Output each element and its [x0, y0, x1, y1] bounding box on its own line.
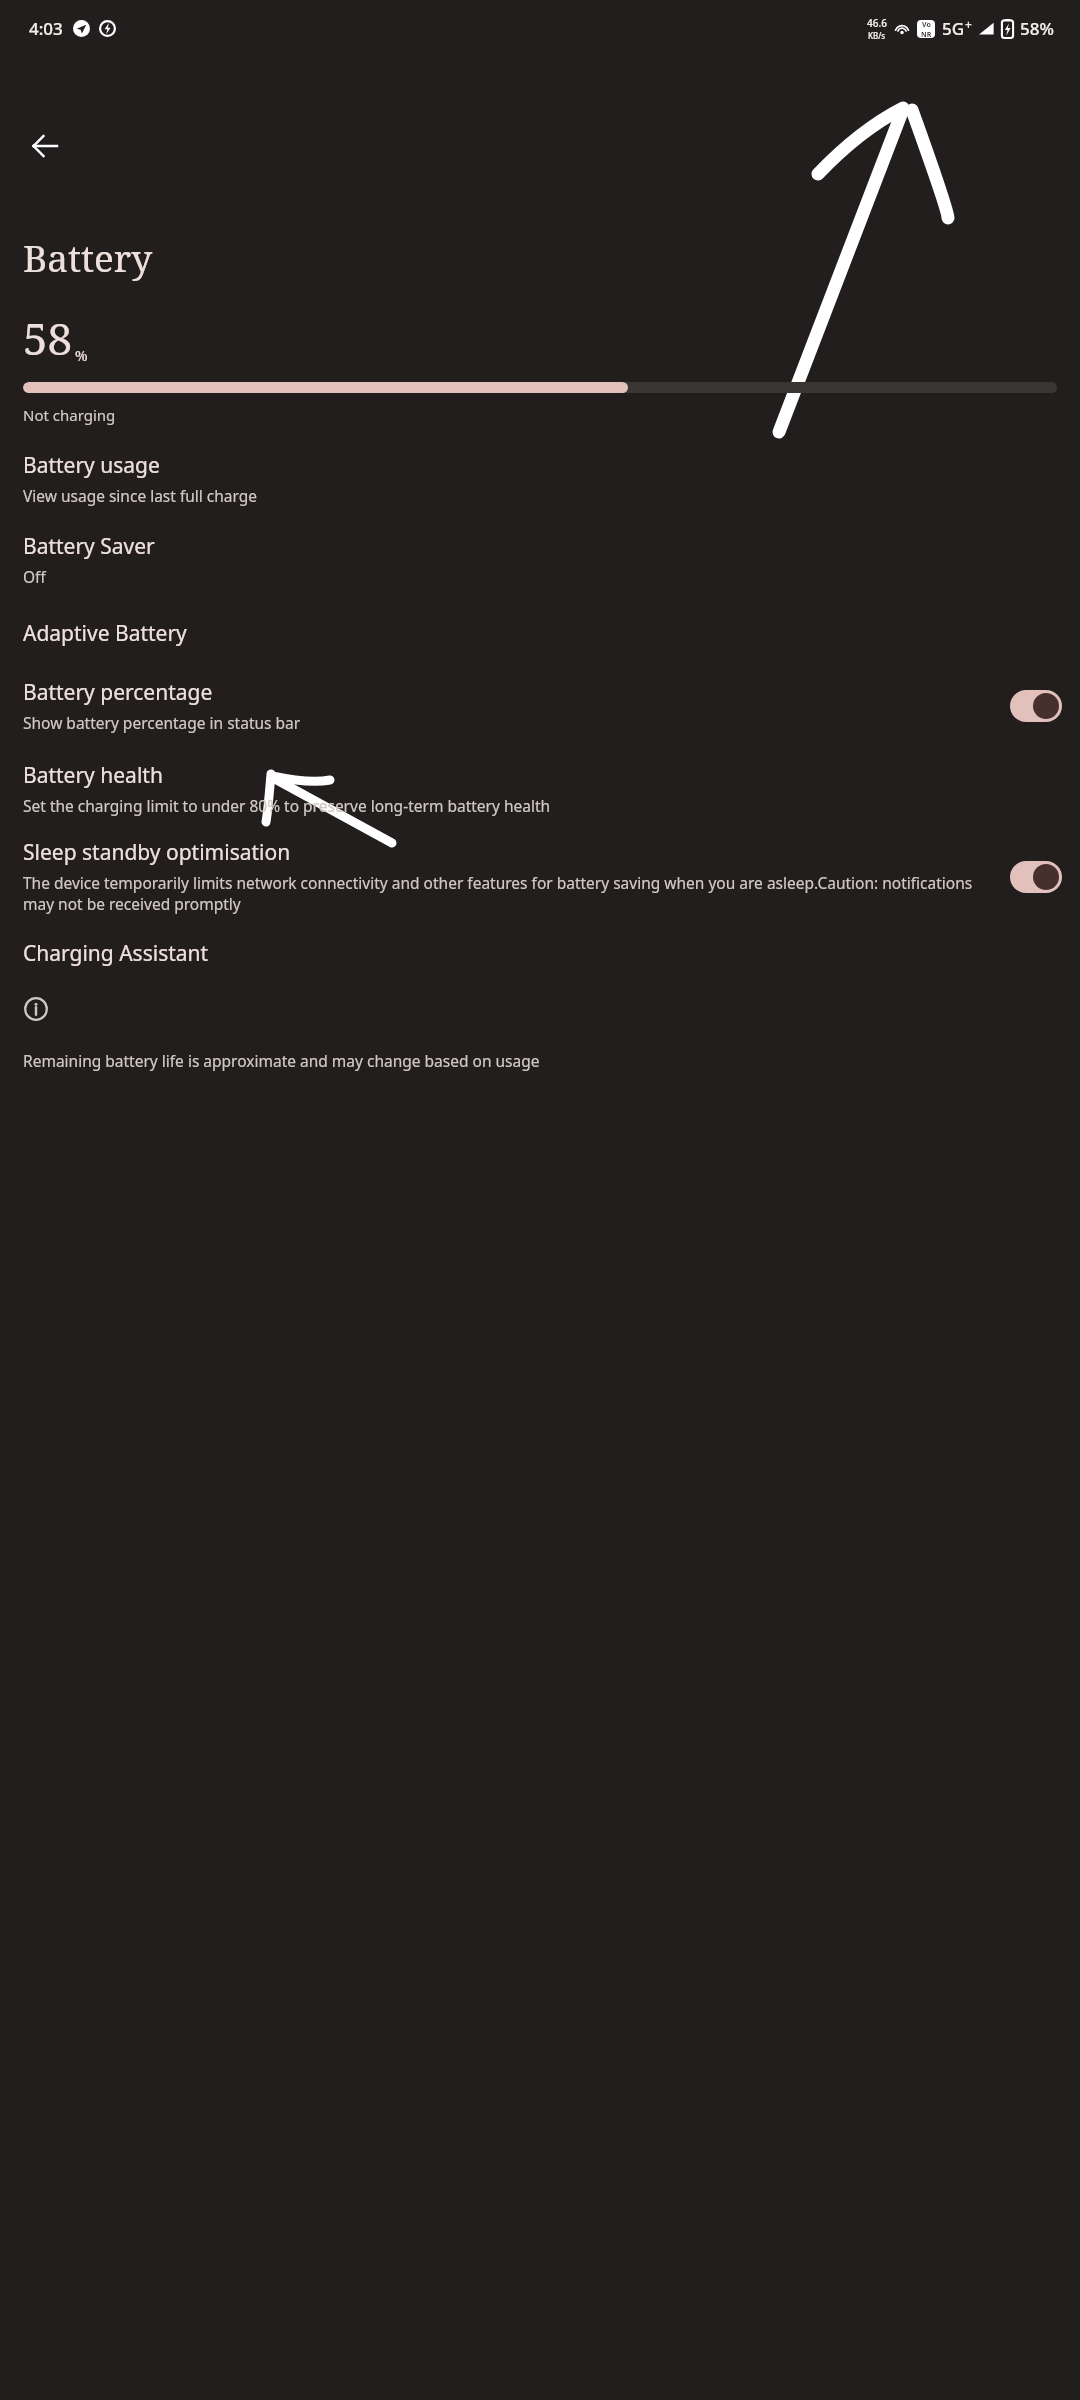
button[interactable]: Battery health — [0, 761, 1080, 816]
staticText: Set the charging limit to under 80% to p… — [23, 795, 551, 816]
button[interactable]: Sleep standby optimisation — [0, 838, 1080, 915]
other: Information — [23, 996, 49, 1022]
staticText: Show battery percentage in status bar — [23, 712, 301, 733]
staticText: 4:03 — [29, 17, 63, 40]
staticText: Remaining battery life is approximate an… — [23, 1050, 540, 1071]
staticText: 58% — [1020, 17, 1054, 40]
button[interactable]: Toggle Battery percentage — [1010, 690, 1062, 722]
staticText: Battery — [23, 232, 153, 282]
staticText: Not charging — [23, 405, 116, 425]
button[interactable]: Adaptive Battery — [0, 619, 1080, 648]
staticText: Battery percentage — [23, 678, 213, 707]
button[interactable]: Back — [21, 122, 69, 170]
staticText: Battery health — [23, 761, 163, 790]
button[interactable]: Charging Assistant — [0, 939, 1080, 968]
staticText: Sleep standby optimisation — [23, 838, 291, 867]
staticText: KB/s — [868, 30, 886, 41]
button[interactable]: Battery percentage — [0, 678, 1080, 733]
button[interactable]: Battery Saver — [0, 532, 1080, 587]
staticText: NR — [921, 30, 932, 38]
staticText: Charging Assistant — [23, 939, 209, 968]
staticText: % — [75, 346, 88, 365]
staticText: 58 — [23, 308, 73, 368]
button[interactable]: Battery usage — [0, 451, 1080, 506]
staticText: Battery Saver — [23, 532, 155, 561]
staticText: Vo — [922, 20, 931, 30]
staticText: 46.6 — [867, 16, 887, 30]
staticText: 5G — [942, 17, 965, 40]
staticText: Adaptive Battery — [23, 619, 187, 648]
staticText: + — [965, 16, 972, 32]
button[interactable]: Toggle Sleep standby optimisation — [1010, 861, 1062, 893]
staticText: Off — [23, 566, 46, 587]
staticText: Battery usage — [23, 451, 160, 480]
staticText: The device temporarily limits network co… — [23, 872, 1000, 915]
staticText: View usage since last full charge — [23, 485, 258, 506]
